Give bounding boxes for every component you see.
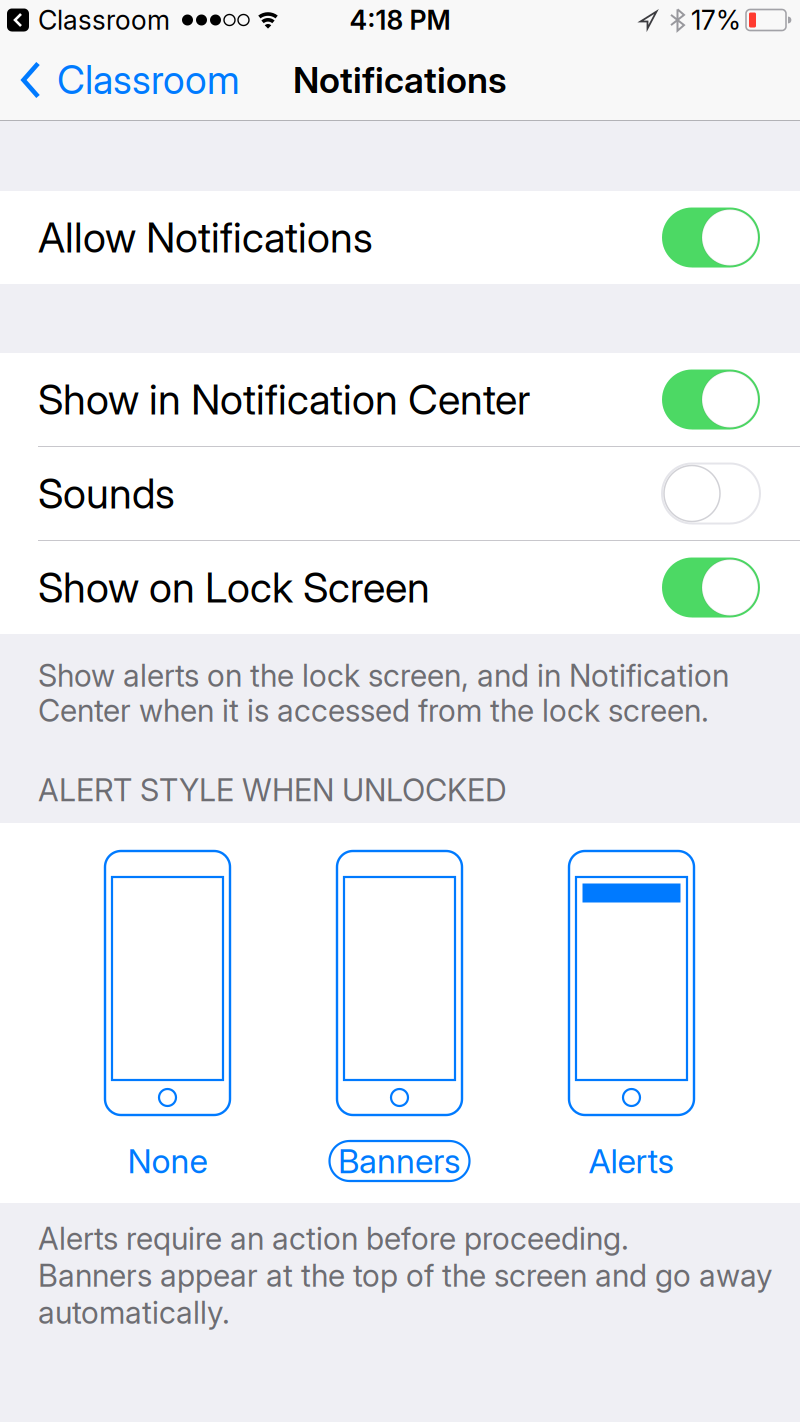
button[interactable]: None bbox=[99, 823, 236, 1203]
button[interactable]: Classroom bbox=[7, 4, 170, 36]
button[interactable]: Show in Notification Center bbox=[662, 369, 760, 429]
staticText: ALERT STYLE WHEN UNLOCKED bbox=[38, 772, 507, 808]
staticText: Show in Notification Center bbox=[38, 375, 530, 424]
staticText: Classroom bbox=[57, 57, 240, 103]
button[interactable]: Alerts bbox=[563, 823, 700, 1203]
staticText: 17% bbox=[691, 4, 741, 36]
staticText: Classroom bbox=[38, 4, 170, 36]
button[interactable]: Classroom bbox=[20, 57, 240, 103]
button[interactable]: Sounds bbox=[662, 463, 760, 523]
button[interactable]: Banners bbox=[331, 823, 468, 1203]
staticText: Allow Notifications bbox=[38, 213, 373, 262]
staticText: Center when it is accessed from the lock… bbox=[38, 692, 709, 729]
staticText: None bbox=[127, 1141, 207, 1181]
staticText: Sounds bbox=[38, 469, 175, 518]
staticText: 4:18 PM bbox=[349, 4, 450, 36]
staticText: Show on Lock Screen bbox=[38, 563, 430, 612]
staticText: Banners appear at the top of the screen … bbox=[38, 1257, 772, 1294]
staticText: Alerts bbox=[588, 1141, 674, 1181]
staticText: Banners bbox=[338, 1141, 461, 1181]
staticText: Show alerts on the lock screen, and in N… bbox=[38, 657, 729, 694]
button[interactable]: Show on Lock Screen bbox=[662, 557, 760, 617]
button[interactable]: Allow Notifications bbox=[662, 207, 760, 267]
staticText: Alerts require an action before proceedi… bbox=[38, 1220, 629, 1257]
staticText: automatically. bbox=[38, 1294, 230, 1331]
staticText: Notifications bbox=[293, 59, 507, 101]
